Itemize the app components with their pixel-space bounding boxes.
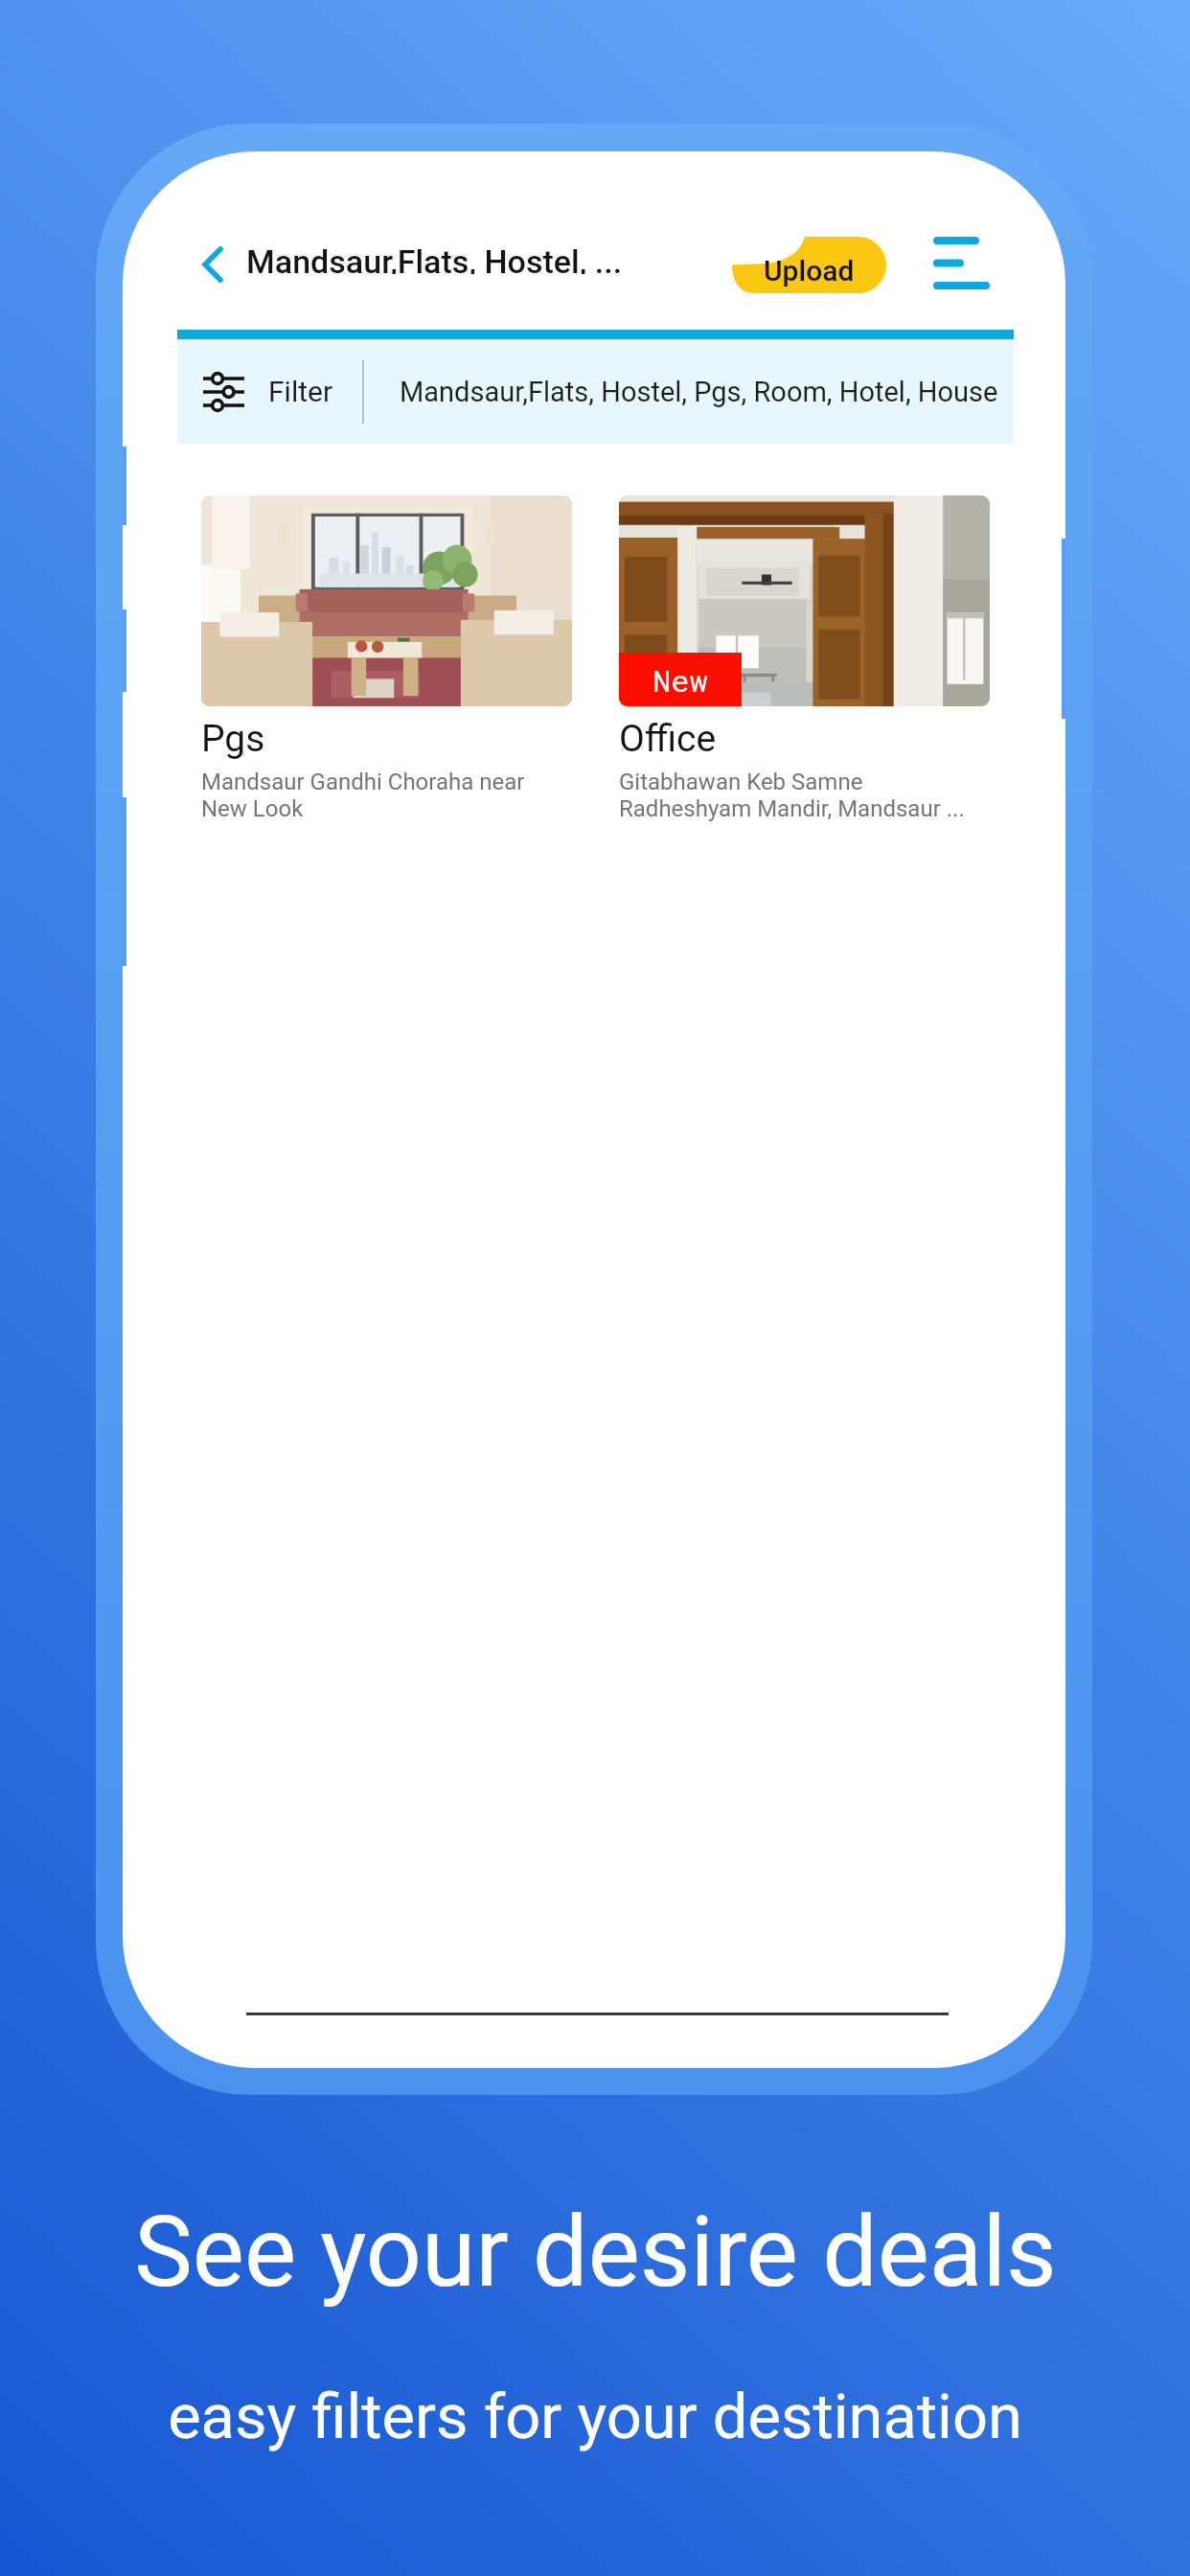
staticText: Filter	[268, 375, 333, 408]
staticText: Pgs	[201, 717, 265, 761]
staticText: New	[652, 659, 708, 700]
staticText: New Look	[201, 795, 304, 822]
button[interactable]: New	[619, 495, 993, 822]
staticText: Office	[619, 717, 717, 761]
staticText: Mandsaur,Flats, Hostel, ...	[246, 242, 623, 281]
staticText: Mandsaur,Flats, Hostel, Pgs, Room, Hotel…	[400, 376, 998, 408]
button[interactable]: Upload	[732, 237, 886, 293]
staticText: Mandsaur Gandhi Choraha near	[201, 769, 525, 795]
button[interactable]: Filter	[177, 339, 1014, 444]
button[interactable]: Back	[178, 234, 245, 295]
button[interactable]: Pgs	[201, 495, 575, 822]
staticText: Radheshyam Mandir, Mandsaur ...	[619, 795, 965, 822]
staticText: Upload	[764, 254, 855, 287]
staticText: easy filters for your destination	[168, 2380, 1022, 2453]
staticText: Gitabhawan Keb Samne	[619, 769, 863, 795]
button[interactable]: Menu	[922, 228, 1018, 301]
staticText: See your desire deals	[134, 2195, 1057, 2310]
